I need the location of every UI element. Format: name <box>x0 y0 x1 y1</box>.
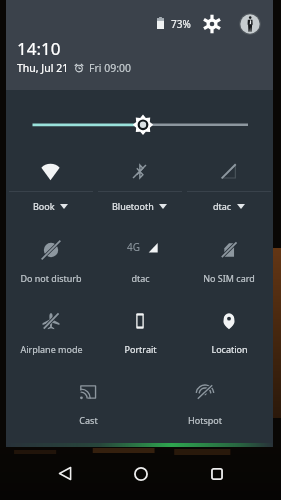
button[interactable]: Recent apps <box>189 447 245 500</box>
button[interactable]: Airplane mode <box>7 297 95 357</box>
staticText: Airplane mode <box>20 343 83 355</box>
staticText: 73% <box>171 17 191 31</box>
staticText: Hotspot <box>188 414 222 426</box>
staticText: Cast <box>79 414 98 426</box>
staticText: 14:10 <box>17 37 61 60</box>
staticText: 4G <box>127 240 140 254</box>
staticText: No SIM card <box>203 272 255 284</box>
staticText: Bluetooth <box>112 200 154 212</box>
button[interactable]: dtac <box>184 150 273 214</box>
button[interactable]: Home <box>113 447 169 500</box>
staticText: Do not disturb <box>20 272 82 284</box>
button[interactable]: User profile <box>239 13 261 35</box>
staticText: dtac <box>131 272 150 284</box>
button[interactable]: Settings <box>198 10 226 38</box>
staticText: dtac <box>213 200 232 212</box>
staticText: Fri 09:00 <box>89 61 132 75</box>
staticText: Book <box>33 200 55 212</box>
button[interactable]: Location <box>185 297 273 357</box>
button[interactable]: Portrait <box>96 297 184 357</box>
button[interactable]: Book <box>6 150 95 214</box>
button[interactable]: Back <box>37 447 93 500</box>
button[interactable]: No SIM card <box>185 226 273 286</box>
staticText: Location <box>211 343 248 355</box>
button[interactable]: Do not disturb <box>7 226 95 286</box>
button[interactable]: Cast <box>44 368 132 428</box>
staticText: Thu, Jul 21 <box>17 61 69 75</box>
button[interactable]: Brightness <box>6 90 273 134</box>
staticText: Portrait <box>124 343 157 355</box>
button[interactable]: Hotspot <box>161 368 249 428</box>
button[interactable]: 4G <box>96 226 184 286</box>
button[interactable]: Bluetooth <box>95 150 184 214</box>
